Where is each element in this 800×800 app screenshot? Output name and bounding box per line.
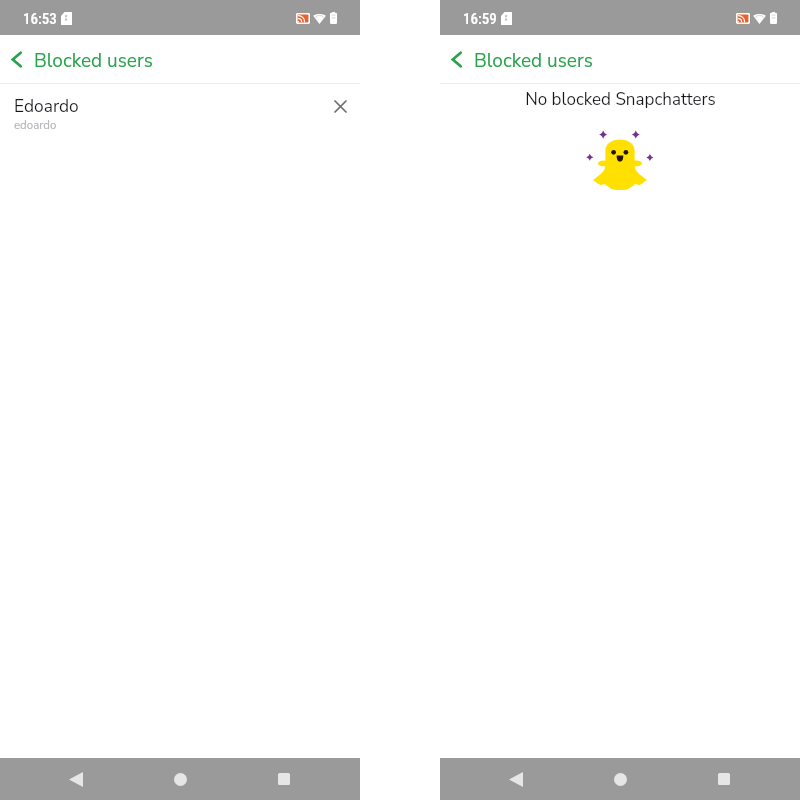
button[interactable]: Recent apps [264,758,304,800]
button[interactable]: Edoardo [0,84,360,146]
staticText: 16:59 [463,10,497,28]
button[interactable]: Back [0,35,360,83]
button[interactable]: Recent apps [704,758,744,800]
staticText: 16:53 [23,10,57,28]
button[interactable]: Home [160,758,200,800]
button[interactable]: Back [496,758,536,800]
other: Back [451,51,462,68]
button[interactable]: Back [56,758,96,800]
staticText: Edoardo [14,95,79,119]
other: Back [11,51,22,68]
button[interactable]: Back [440,35,800,83]
staticText: Blocked users [34,48,153,74]
button[interactable]: Home [600,758,640,800]
button[interactable]: Unblock Edoardo [327,93,353,119]
staticText: Blocked users [474,48,593,74]
staticText: edoardo [14,117,57,133]
staticText: No blocked Snapchatters [525,88,716,111]
